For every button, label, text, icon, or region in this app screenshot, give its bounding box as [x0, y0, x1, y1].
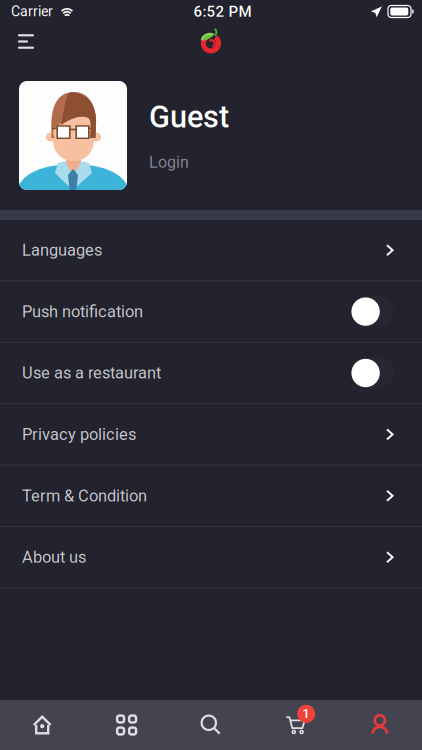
staticText: Carrier: [11, 3, 53, 20]
button[interactable]: Profile: [338, 700, 422, 750]
button[interactable]: Use as a restaurant: [0, 343, 422, 404]
button[interactable]: Login: [149, 135, 209, 178]
button[interactable]: Home: [0, 700, 84, 750]
staticText: Use as a restaurant: [22, 363, 161, 383]
staticText: Push notification: [22, 302, 143, 321]
button[interactable]: Categories: [84, 700, 169, 750]
button[interactable]: Menu: [0, 23, 50, 60]
button[interactable]: Cart: [253, 700, 338, 750]
staticText: Languages: [22, 241, 102, 260]
staticText: 1: [302, 706, 310, 721]
staticText: 6:52 PM: [193, 3, 251, 20]
button[interactable]: Term & Condition: [0, 466, 422, 527]
staticText: Privacy policies: [22, 425, 136, 444]
button[interactable]: Push notification: [0, 281, 422, 343]
button[interactable]: About us: [0, 527, 422, 588]
button[interactable]: Languages: [0, 220, 422, 281]
button[interactable]: Privacy policies: [0, 404, 422, 466]
staticText: About us: [22, 548, 86, 567]
staticText: Login: [149, 153, 189, 172]
staticText: Term & Condition: [22, 486, 147, 505]
staticText: Guest: [149, 99, 229, 135]
button[interactable]: Search: [169, 700, 253, 750]
